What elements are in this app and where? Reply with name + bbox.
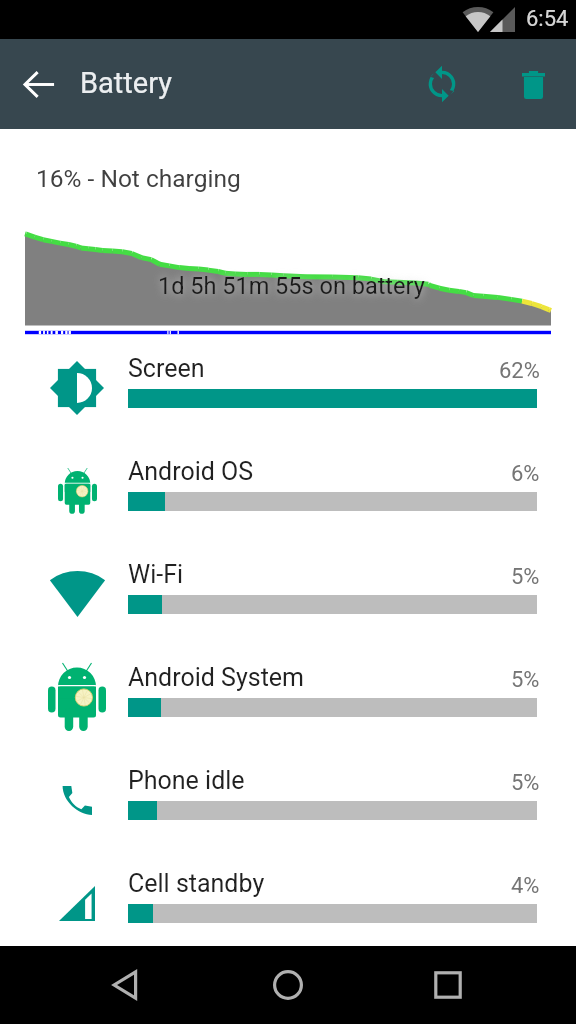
- staticText: 6%: [511, 461, 540, 487]
- staticText: 5%: [511, 667, 540, 693]
- button[interactable]: Delete: [499, 52, 563, 116]
- button[interactable]: Wi-Fi: [0, 554, 576, 650]
- staticText: 62%: [499, 358, 540, 384]
- button[interactable]: Phone idle: [0, 760, 576, 856]
- staticText: Screen: [128, 354, 205, 383]
- staticText: Battery: [80, 66, 172, 100]
- staticText: Wi-Fi: [128, 560, 184, 589]
- staticText: Phone idle: [128, 766, 245, 795]
- staticText: 5%: [511, 564, 540, 590]
- staticText: 16% - Not charging: [36, 164, 241, 193]
- button[interactable]: Android OS: [0, 451, 576, 547]
- staticText: 1d 5h 51m 55s on battery: [158, 272, 425, 300]
- button[interactable]: Android System: [0, 657, 576, 753]
- staticText: 4%: [511, 873, 540, 899]
- staticText: 6:54: [526, 6, 569, 32]
- staticText: Cell standby: [128, 869, 265, 898]
- staticText: Android System: [128, 663, 305, 692]
- button[interactable]: Cell standby: [0, 863, 576, 959]
- button[interactable]: Recent apps: [418, 955, 478, 1015]
- button[interactable]: Screen: [0, 348, 576, 444]
- staticText: Android OS: [128, 457, 254, 486]
- staticText: 5%: [511, 770, 540, 796]
- button[interactable]: Back: [96, 955, 156, 1015]
- button[interactable]: Home: [258, 955, 318, 1015]
- button[interactable]: Navigate up: [7, 52, 71, 116]
- button[interactable]: Refresh: [410, 52, 474, 116]
